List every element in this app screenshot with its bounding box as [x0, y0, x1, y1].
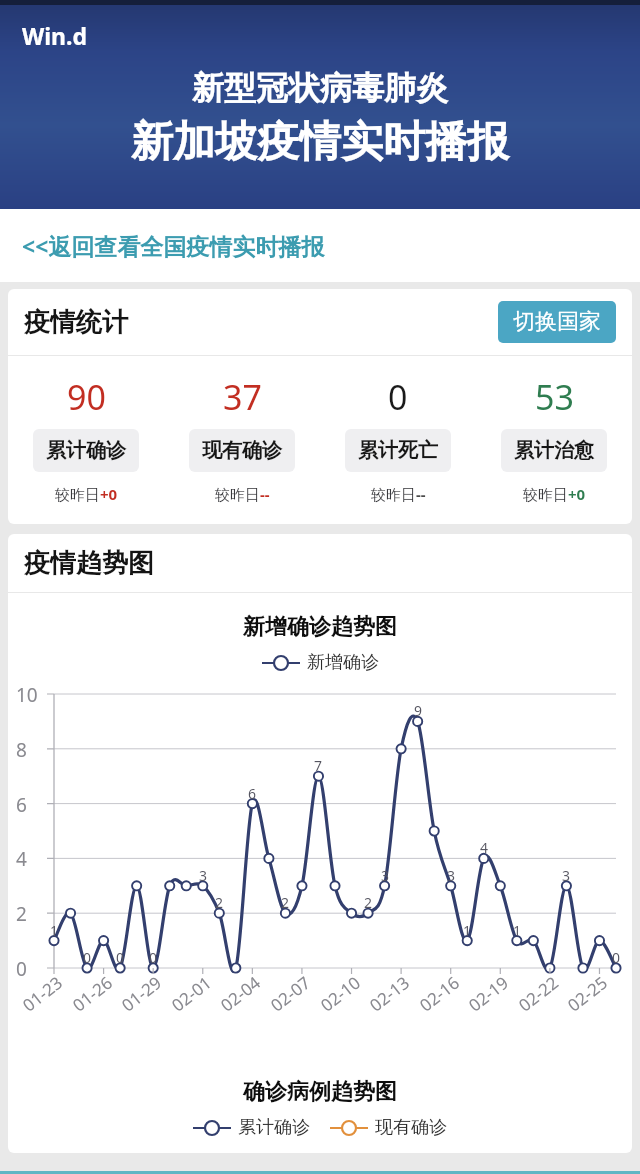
staticText: 53: [535, 374, 574, 420]
staticText: Win.d: [22, 20, 88, 51]
staticText: 较昨日+0: [55, 484, 118, 504]
staticText: 较昨日--: [215, 484, 270, 504]
staticText: 1: [463, 921, 472, 940]
staticText: 10: [16, 682, 38, 708]
staticText: 90: [67, 374, 106, 420]
staticText: 0: [388, 374, 408, 420]
staticText: 累计治愈: [514, 438, 594, 463]
staticText: 3: [447, 866, 456, 885]
staticText: 3: [199, 866, 208, 885]
staticText: 01-29: [117, 971, 166, 1016]
staticText: 02-25: [563, 971, 612, 1016]
staticText: 9: [414, 701, 423, 720]
staticText: 0: [116, 948, 125, 967]
staticText: 疫情趋势图: [24, 547, 154, 580]
button[interactable]: 37: [164, 374, 320, 504]
staticText: 02-22: [514, 971, 563, 1016]
staticText: 新加坡疫情实时播报: [131, 116, 509, 169]
staticText: 0: [83, 948, 92, 967]
staticText: 0: [612, 948, 621, 967]
staticText: 现有确诊: [202, 438, 282, 463]
staticText: 确诊病例趋势图: [243, 1078, 397, 1106]
staticText: 02-19: [464, 971, 513, 1016]
staticText: 01-26: [68, 971, 117, 1016]
staticText: 02-13: [365, 971, 414, 1016]
staticText: 累计死亡: [358, 438, 438, 463]
staticText: <<返回查看全国疫情实时播报: [22, 230, 325, 261]
staticText: 新型冠状病毒肺炎: [192, 68, 448, 108]
staticText: 02-16: [415, 971, 464, 1016]
staticText: 8: [16, 737, 27, 763]
staticText: 4: [480, 838, 489, 857]
staticText: 6: [16, 792, 27, 818]
button[interactable]: 0: [320, 374, 476, 504]
staticText: 新增确诊趋势图: [243, 613, 397, 641]
staticText: 1: [50, 921, 59, 940]
staticText: 1: [513, 921, 522, 940]
staticText: 2: [364, 893, 373, 912]
button[interactable]: 切换国家: [498, 301, 616, 343]
button[interactable]: <<返回查看全国疫情实时播报: [0, 209, 640, 282]
staticText: 02-10: [316, 971, 365, 1016]
staticText: 02-01: [167, 971, 216, 1016]
staticText: 2: [215, 893, 224, 912]
staticText: 切换国家: [513, 308, 601, 336]
staticText: 疫情统计: [24, 306, 128, 339]
staticText: 02-04: [216, 971, 265, 1016]
staticText: 0: [16, 956, 27, 982]
staticText: 37: [223, 374, 262, 420]
staticText: 较昨日--: [371, 484, 426, 504]
staticText: 较昨日+0: [523, 484, 586, 504]
staticText: 新增确诊: [307, 651, 379, 674]
staticText: 7: [314, 756, 323, 775]
staticText: 6: [248, 784, 257, 803]
staticText: 01-23: [18, 971, 67, 1016]
button[interactable]: 90: [8, 374, 164, 504]
button[interactable]: 53: [476, 374, 632, 504]
staticText: 累计确诊: [46, 438, 126, 463]
staticText: 2: [16, 901, 27, 927]
staticText: 4: [16, 846, 27, 872]
staticText: 3: [562, 866, 571, 885]
staticText: 2: [281, 893, 290, 912]
staticText: 02-07: [266, 971, 315, 1016]
staticText: 0: [149, 948, 158, 967]
staticText: 累计确诊: [238, 1116, 310, 1139]
staticText: 3: [381, 866, 390, 885]
staticText: 现有确诊: [375, 1116, 447, 1139]
